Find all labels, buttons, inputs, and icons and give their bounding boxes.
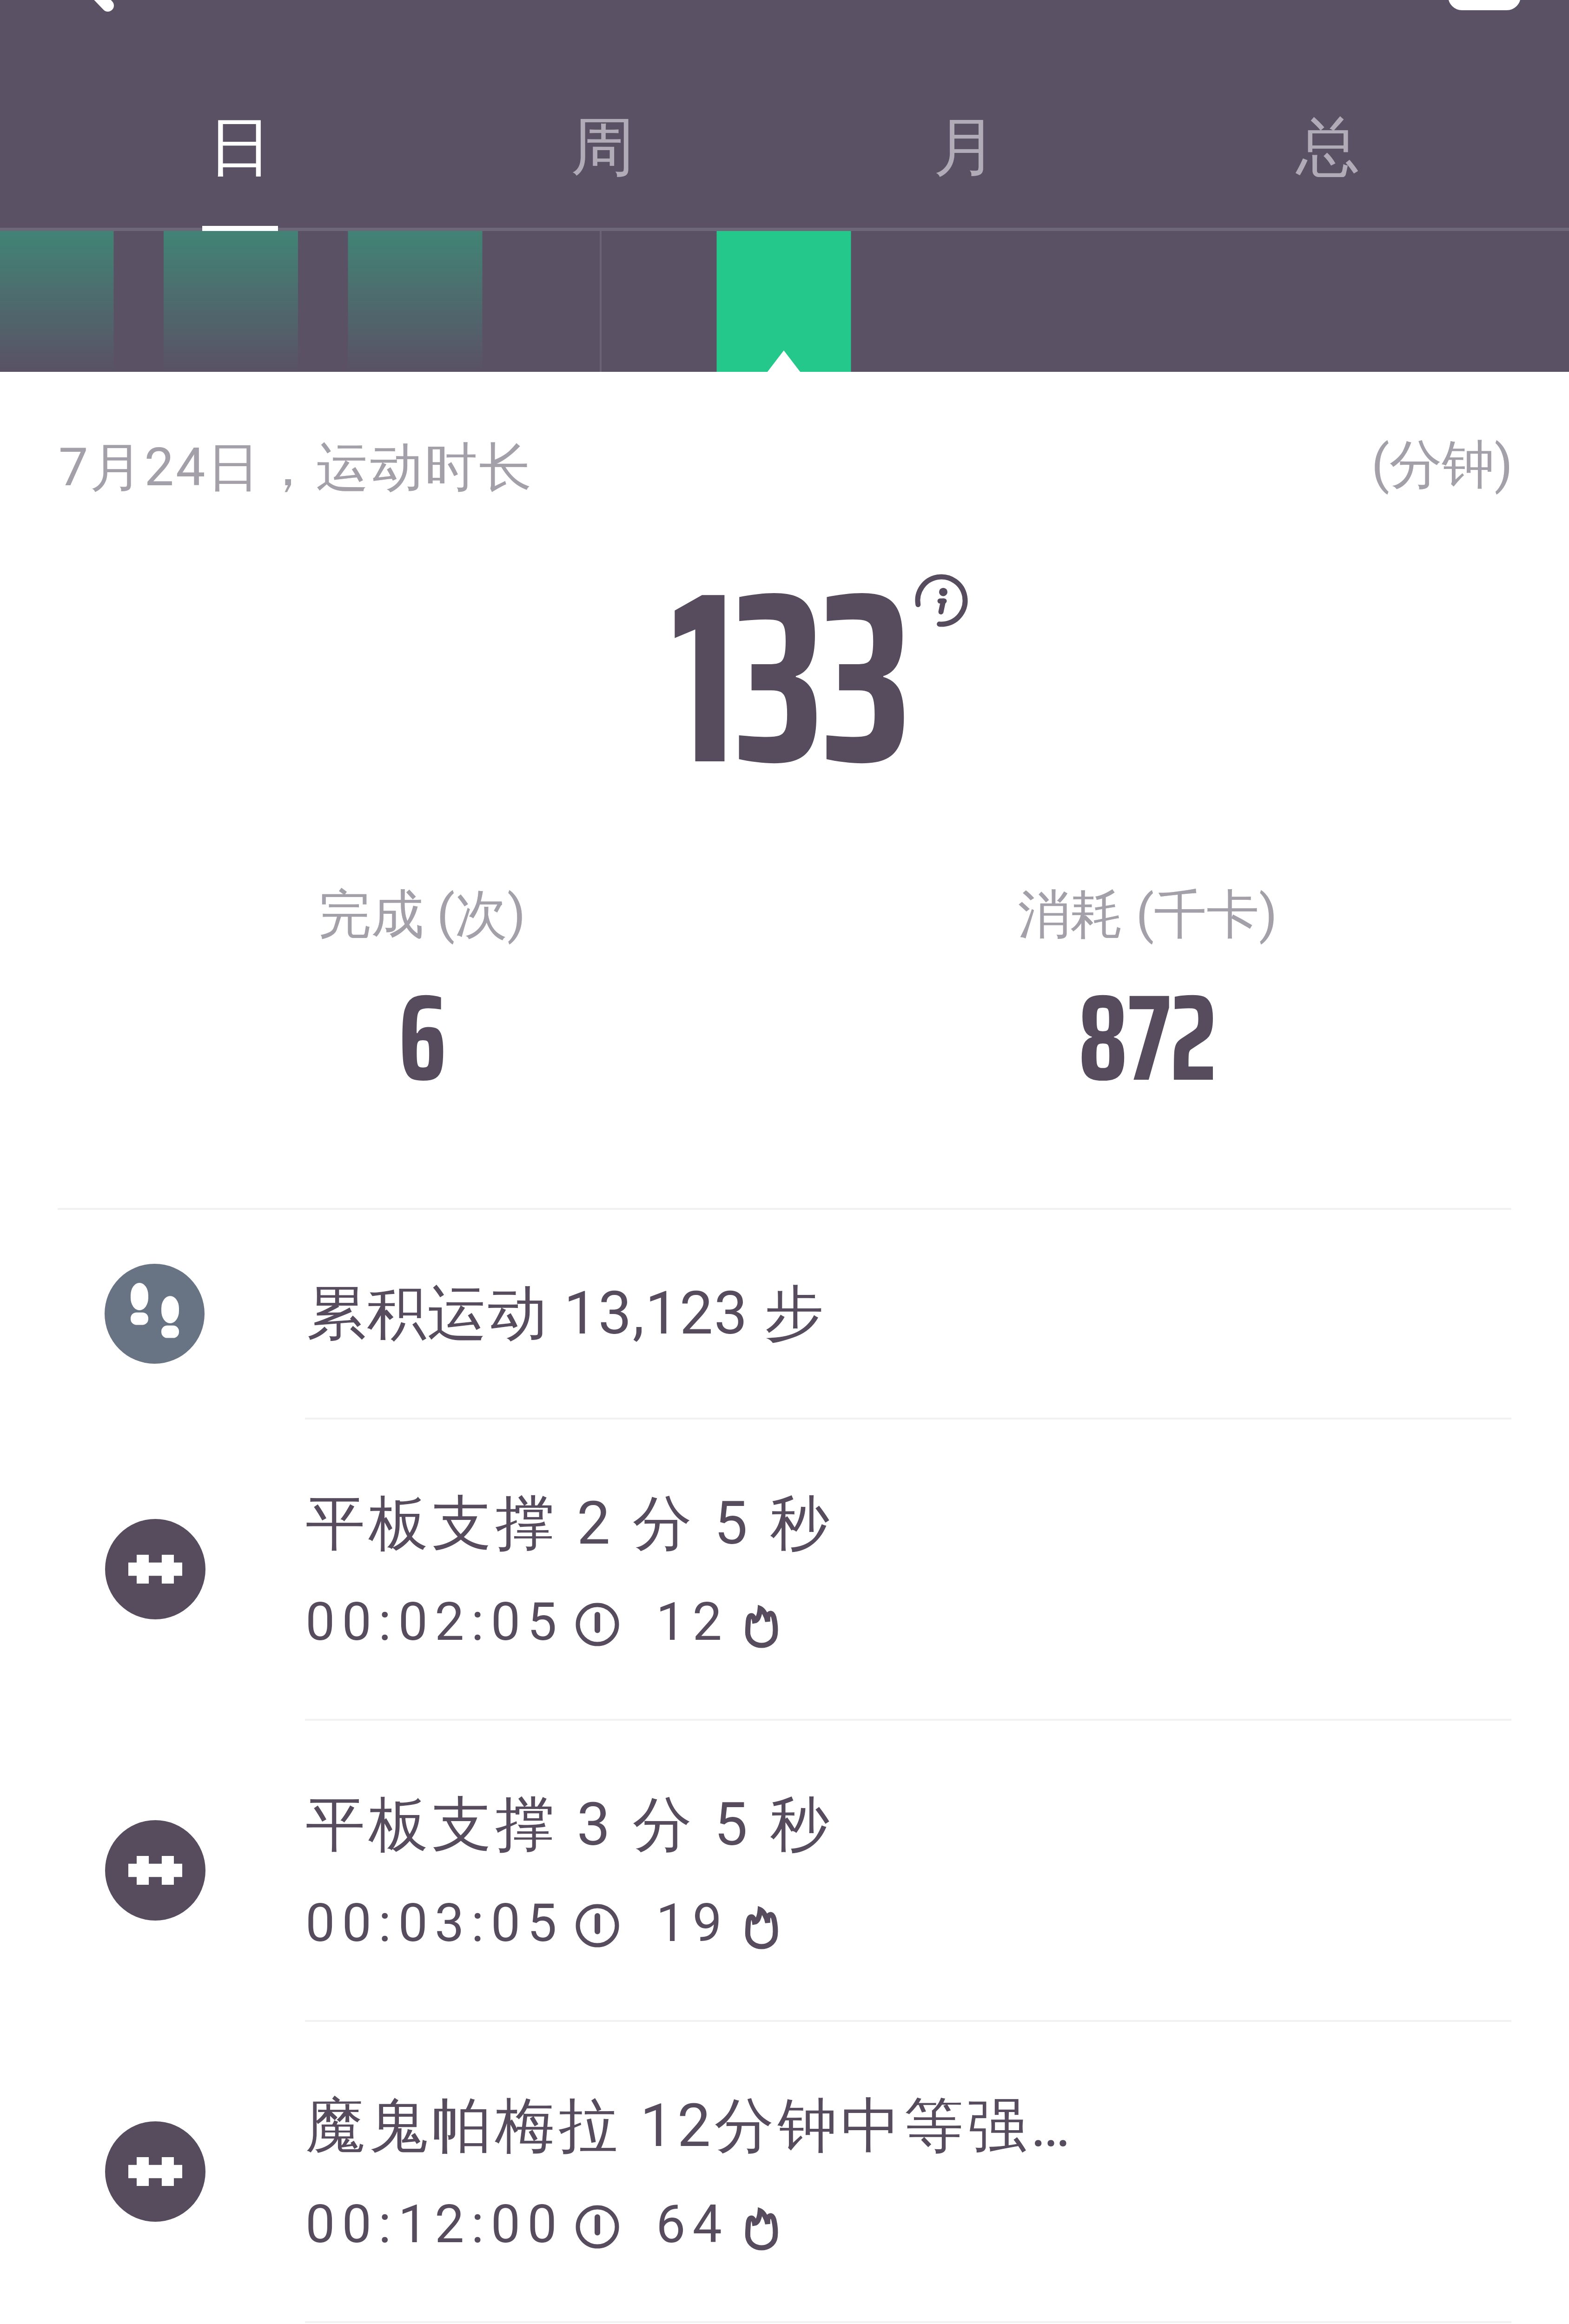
button[interactable]: 平板支撑 2 分 5 秒 <box>0 1419 1569 1719</box>
button[interactable]: 帕梅拉 15分钟日常拉伸训… <box>0 2323 1569 2324</box>
button[interactable]: 日 <box>59 0 421 231</box>
staticText: (分钟) <box>1371 432 1513 498</box>
button[interactable]: 总 <box>1146 0 1509 231</box>
staticText: 12 <box>656 1591 729 1652</box>
staticText: 消耗 (千卡) <box>1018 882 1278 948</box>
button[interactable]: 周 <box>421 0 784 231</box>
staticText: 完成 (次) <box>318 882 526 948</box>
other: Steps <box>131 1283 179 1345</box>
staticText: 872 <box>1078 942 1217 1133</box>
staticText: 魔鬼帕梅拉 12分钟中等强… <box>305 2089 1074 2164</box>
staticText: 64 <box>656 2193 729 2255</box>
staticText: 月 <box>933 107 997 188</box>
button[interactable]: 平板支撑 3 分 5 秒 <box>0 1721 1569 2020</box>
button[interactable]: Back <box>46 0 135 19</box>
staticText: 平板支撑 2 分 5 秒 <box>305 1486 833 1561</box>
staticText: 7月24日，运动时长 <box>59 435 534 501</box>
button[interactable]: 魔鬼帕梅拉 12分钟中等强… <box>0 2022 1569 2321</box>
staticText: 6 <box>398 942 446 1133</box>
staticText: 累积运动 13,123 步 <box>306 1276 825 1351</box>
other: Info <box>914 573 969 628</box>
button[interactable]: Calendar <box>1439 0 1523 19</box>
staticText: 00:03:05 <box>305 1892 564 1954</box>
staticText: 日 <box>208 107 272 188</box>
staticText: 00:02:05 <box>305 1591 564 1652</box>
button[interactable]: Steps <box>0 1210 1569 1418</box>
button[interactable]: 月 <box>784 0 1146 231</box>
staticText: 19 <box>656 1892 729 1954</box>
staticText: 平板支撑 3 分 5 秒 <box>305 1788 833 1862</box>
staticText: 总 <box>1296 107 1360 188</box>
staticText: 00:12:00 <box>305 2193 564 2255</box>
staticText: 133 <box>671 487 911 867</box>
staticText: 周 <box>571 107 635 188</box>
